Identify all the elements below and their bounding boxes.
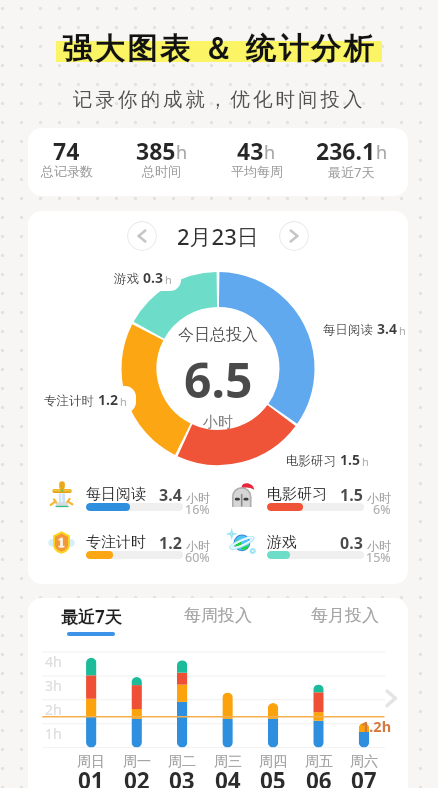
staticText: 385 xyxy=(136,135,176,166)
button[interactable]: Previous day xyxy=(127,221,157,251)
staticText: 每日阅读 xyxy=(86,485,146,504)
staticText: 06 xyxy=(306,765,332,788)
staticText: 周六 xyxy=(350,753,378,771)
staticText: 总时间 xyxy=(142,163,181,179)
staticText: 4h xyxy=(45,652,62,671)
staticText: 每月投入 xyxy=(311,605,379,626)
staticText: 小时 xyxy=(186,490,210,505)
button[interactable]: 最近7天 xyxy=(32,602,150,640)
staticText: 周四 xyxy=(259,753,287,771)
staticText: 01 xyxy=(78,765,104,788)
staticText: 60% xyxy=(185,549,210,566)
button[interactable]: 游戏 xyxy=(229,527,391,567)
staticText: 0.3 xyxy=(340,532,363,554)
staticText: 小时 xyxy=(367,490,391,505)
button[interactable]: Next day xyxy=(279,221,309,251)
button[interactable]: 电影研习 xyxy=(229,479,391,519)
staticText: h xyxy=(120,394,127,409)
staticText: 1.5 xyxy=(340,484,363,506)
staticText: 1.2h xyxy=(361,716,392,736)
staticText: 3.4 xyxy=(377,319,397,338)
staticText: 15% xyxy=(366,549,391,566)
staticText: 0.3 xyxy=(143,268,163,287)
staticText: 周二 xyxy=(168,753,196,771)
button[interactable]: 每日阅读 xyxy=(48,479,210,519)
staticText: 电影研习 xyxy=(267,485,327,504)
staticText: 16% xyxy=(185,501,210,518)
button[interactable]: 专注计时 xyxy=(48,527,210,567)
staticText: 专注计时 xyxy=(86,533,146,552)
button[interactable]: 专注计时 xyxy=(35,386,136,413)
staticText: 最近7天 xyxy=(61,605,122,628)
staticText: 03 xyxy=(169,765,195,788)
staticText: 236.1 xyxy=(316,135,376,166)
staticText: 6.5 xyxy=(184,347,253,412)
staticText: 强大图表 ＆ 统计分析 xyxy=(62,27,377,68)
staticText: 1.5 xyxy=(340,450,360,469)
staticText: 1.2 xyxy=(159,532,182,554)
staticText: h xyxy=(165,272,172,287)
staticText: 平均每周 xyxy=(231,163,283,179)
staticText: 74 xyxy=(53,135,80,166)
staticText: 总记录数 xyxy=(41,163,93,179)
button[interactable]: 电影研习 xyxy=(277,446,378,473)
button[interactable]: 每日阅读 xyxy=(314,315,408,342)
staticText: 43 xyxy=(237,135,264,166)
staticText: 1.2 xyxy=(98,390,118,409)
staticText: 3.4 xyxy=(159,484,182,506)
staticText: h xyxy=(264,140,276,165)
staticText: h xyxy=(362,454,369,469)
staticText: 电影研习 xyxy=(286,453,336,469)
staticText: 小时 xyxy=(203,413,233,432)
staticText: 记录你的成就，优化时间投入 xyxy=(73,87,366,112)
button[interactable]: 每月投入 xyxy=(286,602,404,640)
staticText: h xyxy=(176,140,188,165)
staticText: 3h xyxy=(45,676,62,695)
staticText: 最近7天 xyxy=(328,163,375,181)
staticText: 2h xyxy=(45,700,62,719)
button[interactable]: 游戏 xyxy=(105,264,181,291)
staticText: 05 xyxy=(260,765,286,788)
staticText: 专注计时 xyxy=(44,393,94,409)
staticText: h xyxy=(399,323,406,338)
staticText: 游戏 xyxy=(267,533,297,552)
staticText: 周三 xyxy=(214,753,242,771)
staticText: 04 xyxy=(215,765,241,788)
staticText: 2月23日 xyxy=(177,221,259,251)
staticText: 每周投入 xyxy=(184,605,252,626)
staticText: 小时 xyxy=(367,538,391,553)
staticText: 小时 xyxy=(186,538,210,553)
staticText: 周五 xyxy=(305,753,333,771)
staticText: 今日总投入 xyxy=(178,325,258,345)
staticText: 周日 xyxy=(77,753,105,771)
staticText: 周一 xyxy=(123,753,151,771)
staticText: 1h xyxy=(45,724,62,743)
staticText: h xyxy=(376,140,388,165)
staticText: 6% xyxy=(373,501,391,518)
button[interactable]: 每周投入 xyxy=(159,602,277,640)
staticText: 每日阅读 xyxy=(323,322,373,338)
staticText: 07 xyxy=(351,765,377,788)
staticText: 游戏 xyxy=(114,271,139,287)
staticText: 02 xyxy=(124,765,150,788)
